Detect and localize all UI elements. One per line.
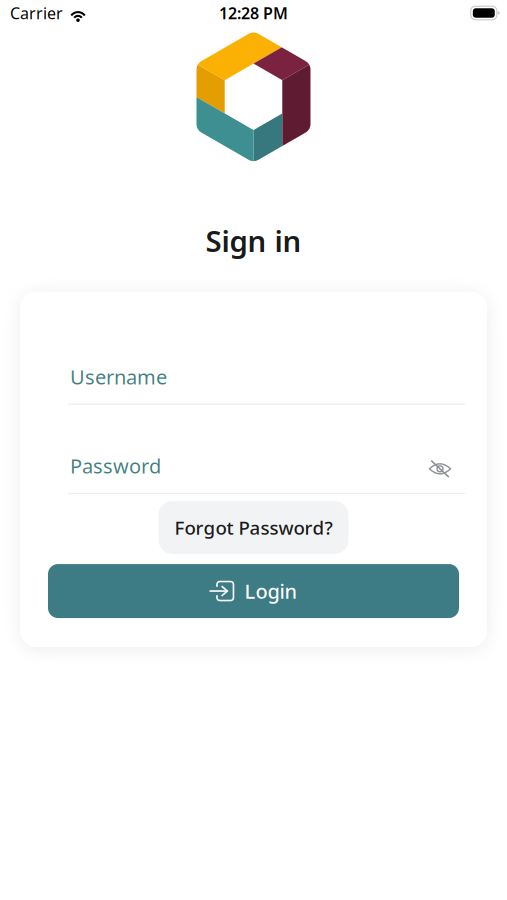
staticText: Username bbox=[70, 363, 167, 390]
staticText: Sign in bbox=[205, 221, 301, 260]
button[interactable]: Login bbox=[20, 564, 487, 618]
staticText: Carrier bbox=[10, 2, 63, 24]
button[interactable]: Forgot Password? bbox=[158, 501, 348, 554]
button[interactable]: Show password bbox=[425, 450, 455, 482]
staticText: Password bbox=[70, 453, 161, 479]
staticText: Forgot Password? bbox=[174, 515, 332, 540]
staticText: Login bbox=[244, 578, 297, 604]
staticText: 12:28 PM bbox=[219, 2, 288, 24]
